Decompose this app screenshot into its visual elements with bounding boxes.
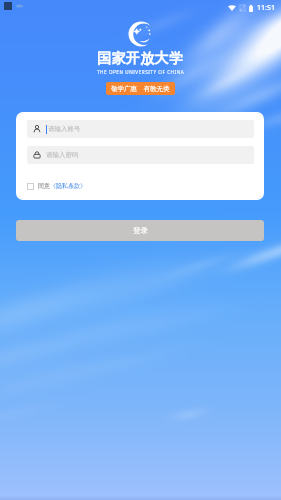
- staticText: 请输入账号: [48, 125, 81, 133]
- button[interactable]: 登录: [16, 220, 264, 241]
- button[interactable]: 请输入账号: [27, 120, 254, 138]
- button[interactable]: 同意: [27, 182, 86, 190]
- button[interactable]: 请输入密码: [27, 146, 254, 164]
- staticText: 11:51: [257, 3, 275, 13]
- staticText: 国家开放大学: [97, 50, 184, 68]
- staticText: 登录: [133, 226, 148, 235]
- staticText: THE OPEN UNIVERSITY OF CHINA: [97, 69, 185, 75]
- staticText: 同意: [38, 182, 50, 190]
- staticText: 请输入密码: [46, 151, 79, 159]
- staticText: 敬学广惠 有教无类: [111, 84, 170, 93]
- staticText: 《隐私条款》: [50, 182, 86, 190]
